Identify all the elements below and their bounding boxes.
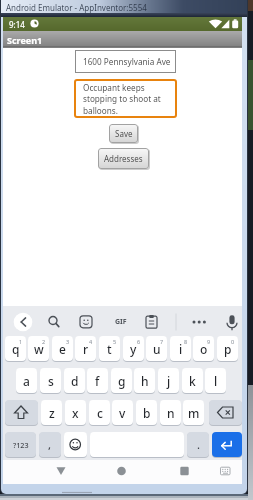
staticText: g (118, 373, 126, 389)
staticText: i (179, 341, 183, 357)
staticText: 1600 Pennsylvania Ave (83, 56, 171, 67)
staticText: m (188, 405, 200, 421)
staticText: t (107, 341, 112, 357)
staticText: 0 (231, 338, 235, 345)
staticText: 9 (207, 338, 211, 345)
staticText: ?123 (13, 440, 29, 450)
staticText: p (224, 341, 232, 357)
staticText: c (97, 405, 103, 421)
button[interactable]: g (111, 368, 132, 393)
staticText: GIF (115, 317, 127, 327)
button[interactable]: o (193, 336, 214, 361)
staticText: . (197, 437, 200, 452)
button[interactable]: w (28, 336, 49, 361)
staticText: 2 (42, 338, 46, 345)
staticText: u (153, 341, 161, 357)
button[interactable]: a (16, 368, 37, 393)
staticText: a (23, 373, 30, 389)
button[interactable]: s (40, 368, 61, 393)
staticText: e (59, 341, 66, 357)
staticText: k (189, 373, 196, 389)
staticText: , (48, 437, 52, 452)
button[interactable]: p (217, 336, 238, 361)
button[interactable] (171, 462, 197, 482)
staticText: b (143, 405, 151, 421)
staticText: 9:14 (9, 19, 25, 30)
button[interactable]: . (187, 432, 209, 457)
staticText: o (200, 341, 208, 357)
button[interactable]: GIF (111, 312, 131, 332)
button[interactable]: m (183, 400, 204, 425)
button[interactable]: n (160, 400, 181, 425)
staticText: y (130, 341, 137, 357)
staticText: l (214, 373, 218, 389)
button[interactable] (221, 312, 241, 332)
button[interactable]: x (65, 400, 86, 425)
button[interactable]: Occupant keeps stopping to shoot at ball… (74, 79, 177, 118)
button[interactable] (209, 400, 242, 425)
button[interactable]: Addresses (98, 148, 149, 169)
staticText: w (34, 341, 44, 357)
staticText: f (95, 373, 100, 389)
staticText: 7 (160, 338, 164, 345)
staticText: 6 (137, 338, 141, 345)
staticText: 5 (113, 338, 117, 345)
staticText: Save (115, 128, 133, 139)
button[interactable] (189, 312, 209, 332)
button[interactable]: 1600 Pennsylvania Ave (75, 50, 176, 73)
button[interactable] (141, 312, 161, 332)
button[interactable]: e (52, 336, 73, 361)
staticText: 1 (19, 338, 23, 345)
button[interactable]: b (136, 400, 157, 425)
staticText: 3 (66, 338, 70, 345)
staticText: v (119, 405, 126, 421)
staticText: n (167, 405, 175, 421)
button[interactable]: r (75, 336, 96, 361)
button[interactable]: ?123 (5, 432, 36, 457)
button[interactable] (216, 462, 234, 482)
button[interactable]: q (5, 336, 26, 361)
staticText: q (12, 341, 20, 357)
button[interactable] (44, 312, 64, 332)
staticText: Occupant keeps stopping to shoot at ball… (83, 82, 161, 117)
button[interactable]: c (89, 400, 110, 425)
staticText: r (83, 341, 89, 357)
staticText: 4 (89, 338, 93, 345)
button[interactable]: d (64, 368, 85, 393)
button[interactable]: l (205, 368, 226, 393)
button[interactable]: f (87, 368, 108, 393)
button[interactable]: z (41, 400, 62, 425)
button[interactable] (13, 312, 33, 332)
staticText: Android Emulator - AppInventor:5554 (6, 2, 147, 13)
staticText: d (71, 373, 79, 389)
staticText: j (167, 373, 171, 389)
button[interactable]: y (123, 336, 144, 361)
staticText: x (72, 405, 79, 421)
button[interactable] (109, 462, 135, 482)
button[interactable] (64, 432, 87, 457)
button[interactable]: h (134, 368, 155, 393)
button[interactable] (76, 312, 96, 332)
staticText: s (48, 373, 54, 389)
button[interactable]: t (99, 336, 120, 361)
staticText: Screen1 (7, 34, 43, 46)
staticText: z (49, 405, 55, 421)
staticText: Addresses (104, 153, 143, 164)
button[interactable]: , (39, 432, 61, 457)
button[interactable]: i (170, 336, 191, 361)
button[interactable]: j (158, 368, 179, 393)
button[interactable] (212, 432, 242, 457)
staticText: h (141, 373, 149, 389)
button[interactable] (48, 462, 74, 482)
button[interactable]: k (182, 368, 203, 393)
button[interactable] (5, 400, 38, 425)
button[interactable]: v (112, 400, 133, 425)
button[interactable]: Save (109, 124, 138, 143)
staticText: 8 (184, 338, 188, 345)
button[interactable]: u (146, 336, 167, 361)
